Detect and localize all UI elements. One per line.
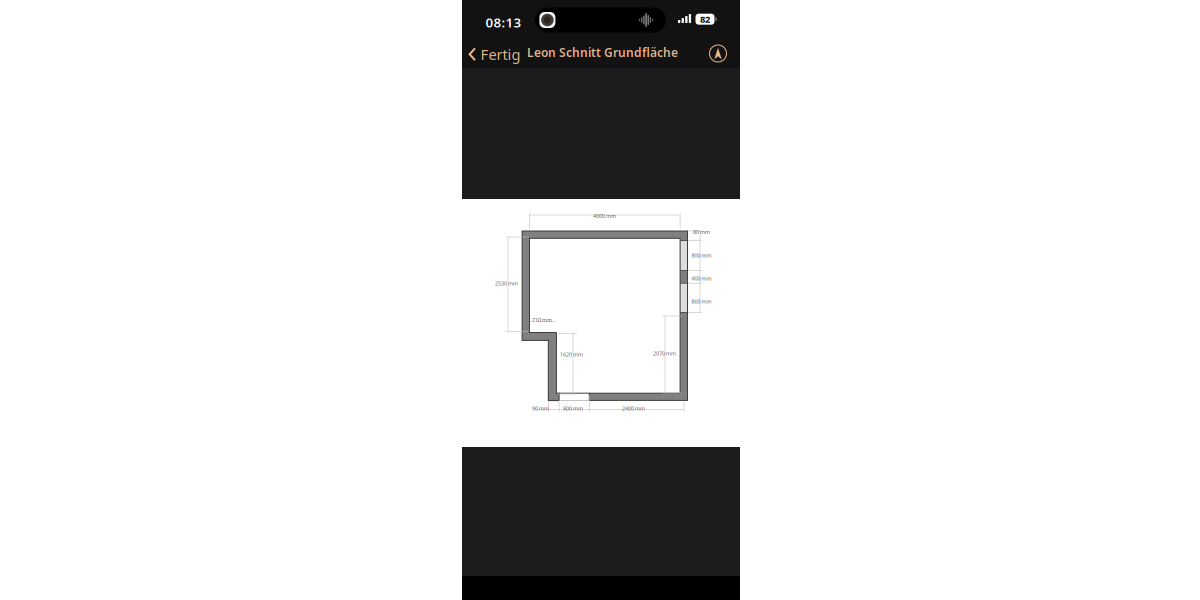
staticText: 08:13 (485, 13, 521, 31)
staticText: 2400 mm (622, 405, 645, 412)
staticText: 2530 mm (495, 280, 518, 287)
staticText: 82 (700, 13, 710, 25)
button[interactable]: Fertig (464, 41, 525, 67)
staticText: Leon Schnitt Grundfläche (527, 44, 678, 60)
button[interactable]: Kompass ausrichten (709, 45, 726, 62)
staticText: 800 mm (563, 405, 583, 412)
staticText: 800 mm (691, 298, 711, 305)
staticText: 4000 mm (593, 212, 616, 220)
staticText: 800 mm (691, 252, 711, 259)
staticText: 80 mm (693, 228, 710, 236)
staticText: 400 mm (691, 275, 711, 282)
staticText: Fertig (481, 44, 521, 64)
staticText: 2070 mm (653, 350, 676, 357)
staticText: 90 mm (532, 405, 549, 412)
staticText: 710 mm (532, 316, 552, 324)
staticText: 1620 mm (560, 351, 583, 358)
